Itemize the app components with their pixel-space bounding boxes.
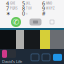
button[interactable]: 0 xyxy=(22,11,42,16)
staticText: 7 xyxy=(6,5,9,12)
button[interactable]: Delete xyxy=(50,20,54,24)
staticText: David's Life xyxy=(2,59,22,64)
staticText: 6 xyxy=(42,0,45,7)
staticText: PQRS xyxy=(10,7,17,10)
button[interactable]: Present xyxy=(31,54,39,61)
button[interactable]: 8 xyxy=(22,6,42,11)
staticText: + xyxy=(26,12,28,15)
staticText: JKL xyxy=(26,2,30,5)
button[interactable]: ∗ xyxy=(6,11,22,16)
staticText: GHI xyxy=(10,2,15,5)
button[interactable]: Effects xyxy=(42,54,50,61)
staticText: 8 xyxy=(22,5,25,12)
staticText: 0 xyxy=(22,10,25,17)
button[interactable]: # xyxy=(42,11,60,16)
button[interactable]: 4 xyxy=(6,1,22,6)
button[interactable]: Participants xyxy=(53,54,62,61)
staticText: 5 xyxy=(22,0,25,7)
button[interactable]: Video xyxy=(29,18,41,25)
button[interactable]: Call xyxy=(11,17,21,27)
staticText: MNO xyxy=(46,2,52,5)
staticText: 9 xyxy=(42,5,45,12)
button[interactable]: 7 xyxy=(6,6,22,11)
staticText: 4 xyxy=(6,0,9,7)
staticText: # xyxy=(42,10,45,17)
button[interactable]: 9 xyxy=(42,6,60,11)
staticText: TUV xyxy=(26,7,32,10)
button[interactable]: 5 xyxy=(22,1,42,6)
staticText: ✆ xyxy=(12,17,19,27)
staticText: WXYZ xyxy=(46,7,55,10)
staticText: ∗ xyxy=(6,10,10,17)
button[interactable]: 6 xyxy=(42,1,60,6)
